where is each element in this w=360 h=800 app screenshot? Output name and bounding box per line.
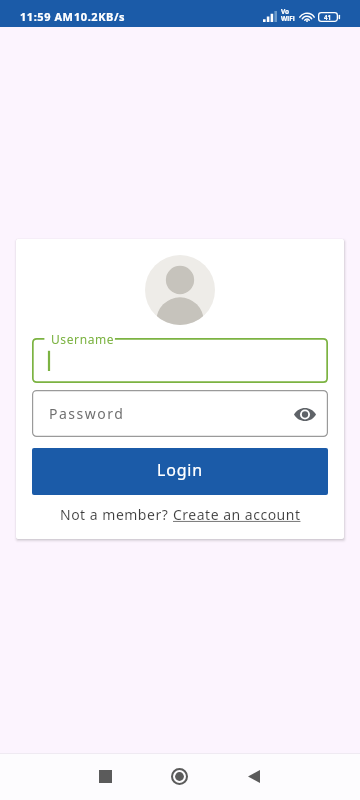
button[interactable]: Home: [159, 756, 200, 797]
staticText: Login: [157, 459, 203, 481]
staticText: Not a member?: [60, 505, 173, 524]
staticText: Password: [49, 404, 125, 423]
button[interactable]: Show password: [291, 400, 319, 428]
button[interactable]: Create an account: [173, 505, 301, 524]
staticText: 11:59 AM: [20, 9, 74, 24]
button[interactable]: Login: [32, 448, 328, 495]
staticText: Create an account: [173, 505, 301, 524]
button[interactable]: Username: [32, 330, 328, 383]
staticText: 10.2KB/s: [74, 9, 126, 24]
button[interactable]: Recent apps: [85, 756, 126, 797]
staticText: WiFi: [281, 14, 295, 23]
staticText: Vo: [281, 7, 290, 16]
staticText: Username: [51, 331, 115, 347]
button[interactable]: Password: [32, 390, 328, 437]
staticText: 41: [324, 13, 332, 21]
button[interactable]: Back: [233, 756, 274, 797]
